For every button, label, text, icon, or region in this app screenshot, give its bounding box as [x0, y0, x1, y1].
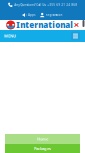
- button[interactable]: Apps: [22, 13, 35, 17]
- staticText: Home: [37, 136, 48, 142]
- staticText: Registration: [46, 13, 63, 17]
- button[interactable]: Open menu: [71, 32, 85, 40]
- button[interactable]: Registration: [40, 13, 63, 17]
- button[interactable]: Packages: [5, 144, 80, 153]
- button[interactable]: Home: [5, 134, 80, 144]
- staticText: Apps: [28, 13, 35, 17]
- staticText: International: [16, 20, 73, 30]
- button[interactable]: International home: [0, 20, 85, 30]
- staticText: Packages: [34, 146, 51, 151]
- staticText: MENU: [4, 33, 16, 39]
- staticText: Any Questions? Call Us: +355 69 21 24 86…: [14, 3, 77, 7]
- button[interactable]: MENU: [0, 30, 16, 42]
